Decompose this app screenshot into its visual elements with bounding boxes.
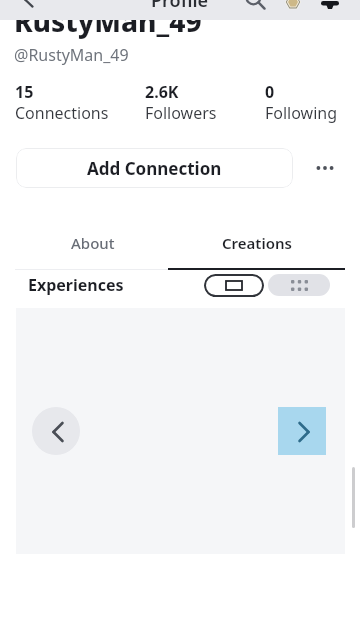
- staticText: Following: [265, 102, 338, 124]
- button[interactable]: Grid view: [268, 274, 330, 296]
- button[interactable]: Card view: [204, 274, 264, 297]
- button[interactable]: Search: [240, 0, 270, 9]
- button[interactable]: Add Connection: [16, 148, 293, 188]
- button[interactable]: Next: [278, 407, 326, 455]
- staticText: Connections: [15, 102, 109, 124]
- staticText: RustyMan_49: [14, 2, 202, 40]
- staticText: 15: [15, 81, 34, 103]
- button[interactable]: About: [17, 222, 169, 264]
- button[interactable]: Previous: [32, 407, 80, 455]
- staticText: Followers: [145, 102, 217, 124]
- staticText: 0: [265, 81, 275, 103]
- button[interactable]: 2.6K: [145, 81, 225, 118]
- staticText: Profile: [151, 0, 209, 8]
- button[interactable]: Filter: [315, 0, 345, 13]
- staticText: About: [71, 233, 115, 253]
- button[interactable]: 15: [15, 81, 115, 118]
- button[interactable]: 0: [265, 81, 345, 118]
- button[interactable]: Back: [14, 0, 44, 9]
- button[interactable]: Badges: [278, 0, 308, 12]
- staticText: Experiences: [28, 274, 124, 296]
- staticText: 2.6K: [145, 81, 179, 103]
- button[interactable]: More options: [312, 155, 338, 181]
- staticText: Creations: [222, 233, 292, 253]
- staticText: @RustyMan_49: [14, 44, 129, 66]
- staticText: Add Connection: [87, 157, 222, 180]
- button[interactable]: Creations: [168, 222, 345, 264]
